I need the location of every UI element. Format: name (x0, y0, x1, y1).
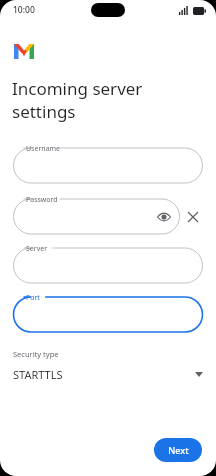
button[interactable]: Security type (13, 349, 203, 382)
staticText: Password (26, 195, 58, 205)
button[interactable]: Clear password (182, 206, 204, 228)
button[interactable]: Port (13, 289, 203, 333)
staticText: STARTTLS (13, 367, 63, 382)
staticText: Port (26, 293, 40, 303)
staticText: Username (26, 144, 61, 154)
staticText: Server (26, 244, 48, 254)
staticText: Incoming server settings (12, 77, 143, 123)
button[interactable]: Username (13, 140, 203, 184)
staticText: Next (168, 444, 189, 456)
staticText: Security type (13, 349, 59, 359)
staticText: 10:00 (13, 4, 35, 16)
button[interactable]: Show password (156, 209, 172, 225)
button[interactable]: Password (13, 191, 180, 235)
button[interactable]: Next (154, 438, 202, 462)
button[interactable]: Server (13, 240, 203, 284)
